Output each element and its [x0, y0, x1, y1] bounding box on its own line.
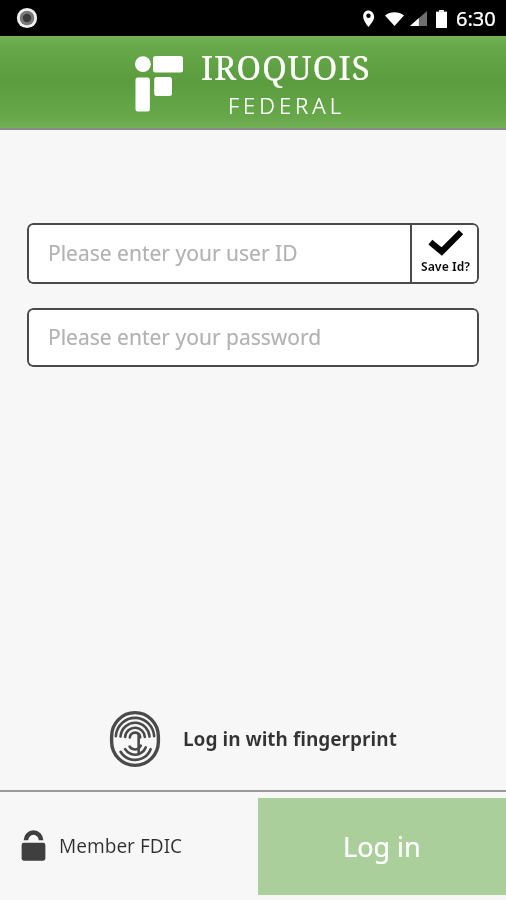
- button[interactable]: Please enter your password: [27, 308, 479, 367]
- staticText: Please enter your user ID: [48, 239, 298, 268]
- button[interactable]: Please enter your user ID: [27, 223, 479, 284]
- button[interactable]: Log in: [258, 798, 506, 895]
- staticText: Log in with fingerprint: [183, 726, 397, 752]
- staticText: FEDERAL: [228, 90, 345, 120]
- staticText: 6:30: [456, 5, 496, 32]
- staticText: Log in: [343, 828, 421, 865]
- staticText: Please enter your password: [48, 323, 322, 352]
- button[interactable]: Fingerprint: [109, 710, 397, 768]
- staticText: Member FDIC: [59, 833, 183, 859]
- button[interactable]: Save Id: [412, 223, 479, 284]
- other: Fingerprint: [109, 710, 161, 768]
- staticText: Save Id?: [421, 258, 470, 274]
- staticText: IROQUOIS: [201, 45, 371, 90]
- button[interactable]: Member FDIC: [20, 830, 183, 862]
